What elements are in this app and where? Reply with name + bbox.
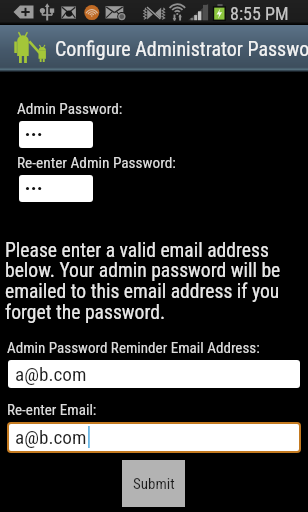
staticText: Please enter a valid email address below…: [5, 239, 297, 324]
staticText: a@b.com: [15, 363, 87, 386]
staticText: 8:55 PM: [230, 3, 289, 24]
staticText: a@b.com: [15, 426, 87, 449]
button[interactable]: a@b.com: [9, 424, 299, 451]
staticText: Re-enter Admin Password:: [17, 154, 176, 172]
staticText: Re-enter Email:: [7, 401, 97, 419]
button[interactable]: [19, 175, 93, 202]
button[interactable]: [19, 121, 93, 148]
staticText: Admin Password Reminder Email Address:: [7, 339, 260, 357]
button[interactable]: Submit: [122, 460, 185, 507]
staticText: Configure Administrator Password: [55, 37, 308, 60]
button[interactable]: a@b.com: [8, 360, 300, 388]
staticText: Submit: [133, 475, 175, 493]
staticText: Admin Password:: [17, 100, 123, 118]
